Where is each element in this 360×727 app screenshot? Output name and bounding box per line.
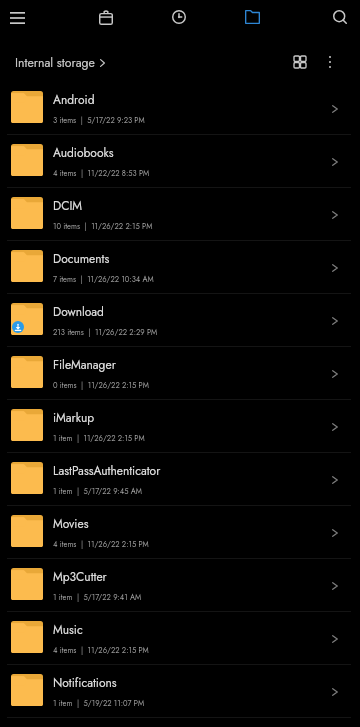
button[interactable]: Notifications: [0, 665, 360, 718]
button[interactable]: Audiobooks: [0, 135, 360, 188]
staticText: FileManager: [53, 356, 116, 373]
staticText: Mp3Cutter: [53, 568, 107, 585]
staticText: 4 items | 11/26/22 2:15 PM: [53, 645, 149, 656]
button[interactable]: LastPassAuthenticator: [0, 453, 360, 506]
staticText: 4 items | 11/26/22 2:15 PM: [53, 539, 149, 550]
staticText: LastPassAuthenticator: [53, 462, 161, 479]
staticText: Documents: [53, 250, 110, 267]
button[interactable]: Documents: [0, 241, 360, 294]
staticText: Internal storage: [15, 54, 95, 72]
button[interactable]: Movies: [0, 506, 360, 559]
button[interactable]: Android: [0, 82, 360, 135]
button[interactable]: Menu: [2, 2, 33, 33]
button[interactable]: More options: [316, 48, 344, 76]
staticText: 213 items | 11/26/22 2:29 PM: [53, 327, 158, 338]
staticText: 1 item | 11/26/22 2:15 PM: [53, 433, 145, 444]
button[interactable]: Search: [324, 1, 355, 32]
staticText: Audiobooks: [53, 144, 114, 161]
staticText: 0 items | 11/26/22 2:15 PM: [53, 380, 149, 391]
staticText: Movies: [53, 515, 89, 532]
staticText: 3 items | 5/17/22 9:23 PM: [53, 115, 145, 126]
staticText: 10 items | 11/26/22 2:15 PM: [53, 221, 153, 232]
button[interactable]: Mp3Cutter: [0, 559, 360, 612]
staticText: iMarkup: [53, 409, 95, 426]
button[interactable]: Internal storage: [11, 50, 109, 76]
button[interactable]: Clean up: [90, 2, 121, 33]
button[interactable]: Recent files: [163, 1, 194, 32]
staticText: 7 items | 11/26/22 10:34 AM: [53, 274, 154, 285]
staticText: Music: [53, 621, 83, 638]
staticText: DCIM: [53, 197, 83, 214]
staticText: 1 item | 5/19/22 11:07 PM: [53, 698, 145, 709]
button[interactable]: Music: [0, 612, 360, 665]
button[interactable]: My files: [237, 1, 268, 32]
staticText: Android: [53, 91, 95, 108]
staticText: Download: [53, 303, 104, 320]
staticText: 1 item | 5/17/22 9:45 AM: [53, 486, 142, 497]
staticText: Notifications: [53, 674, 117, 691]
button[interactable]: Download: [0, 294, 360, 347]
staticText: 4 items | 11/22/22 8:53 PM: [53, 168, 150, 179]
button[interactable]: Grid view: [286, 48, 314, 76]
button[interactable]: FileManager: [0, 347, 360, 400]
staticText: 1 item | 5/17/22 9:41 AM: [53, 592, 142, 603]
button[interactable]: DCIM: [0, 188, 360, 241]
button[interactable]: iMarkup: [0, 400, 360, 453]
